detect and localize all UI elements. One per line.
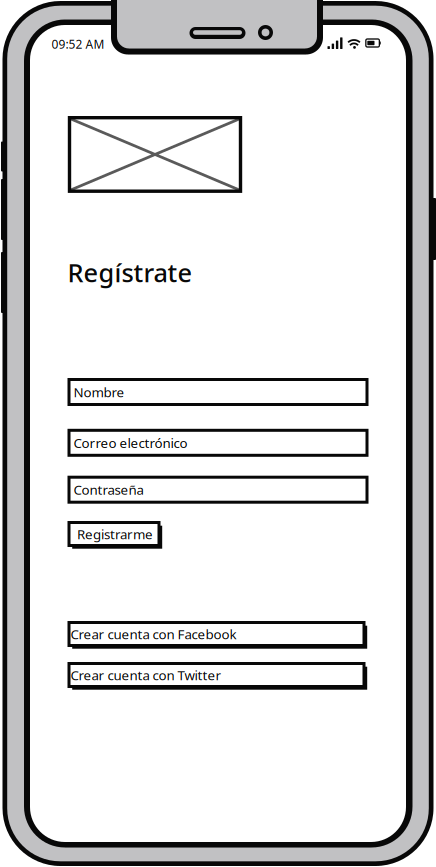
button[interactable]: Registrarme (69, 522, 159, 545)
staticText: Correo electrónico (73, 434, 187, 452)
staticText: Contraseña (73, 481, 143, 498)
staticText: Crear cuenta con Twitter (70, 666, 221, 684)
staticText: Nombre (73, 383, 124, 401)
staticText: Regístrate (67, 256, 192, 289)
button[interactable]: Correo electrónico (69, 430, 367, 455)
staticText: 09:52 AM (51, 36, 104, 52)
staticText: Crear cuenta con Facebook (70, 625, 236, 643)
button[interactable]: Nombre (69, 379, 367, 404)
button[interactable]: Crear cuenta con Facebook (69, 622, 364, 645)
staticText: Registrarme (77, 525, 153, 543)
button[interactable]: Contraseña (69, 477, 367, 502)
button[interactable]: Crear cuenta con Twitter (69, 663, 364, 686)
